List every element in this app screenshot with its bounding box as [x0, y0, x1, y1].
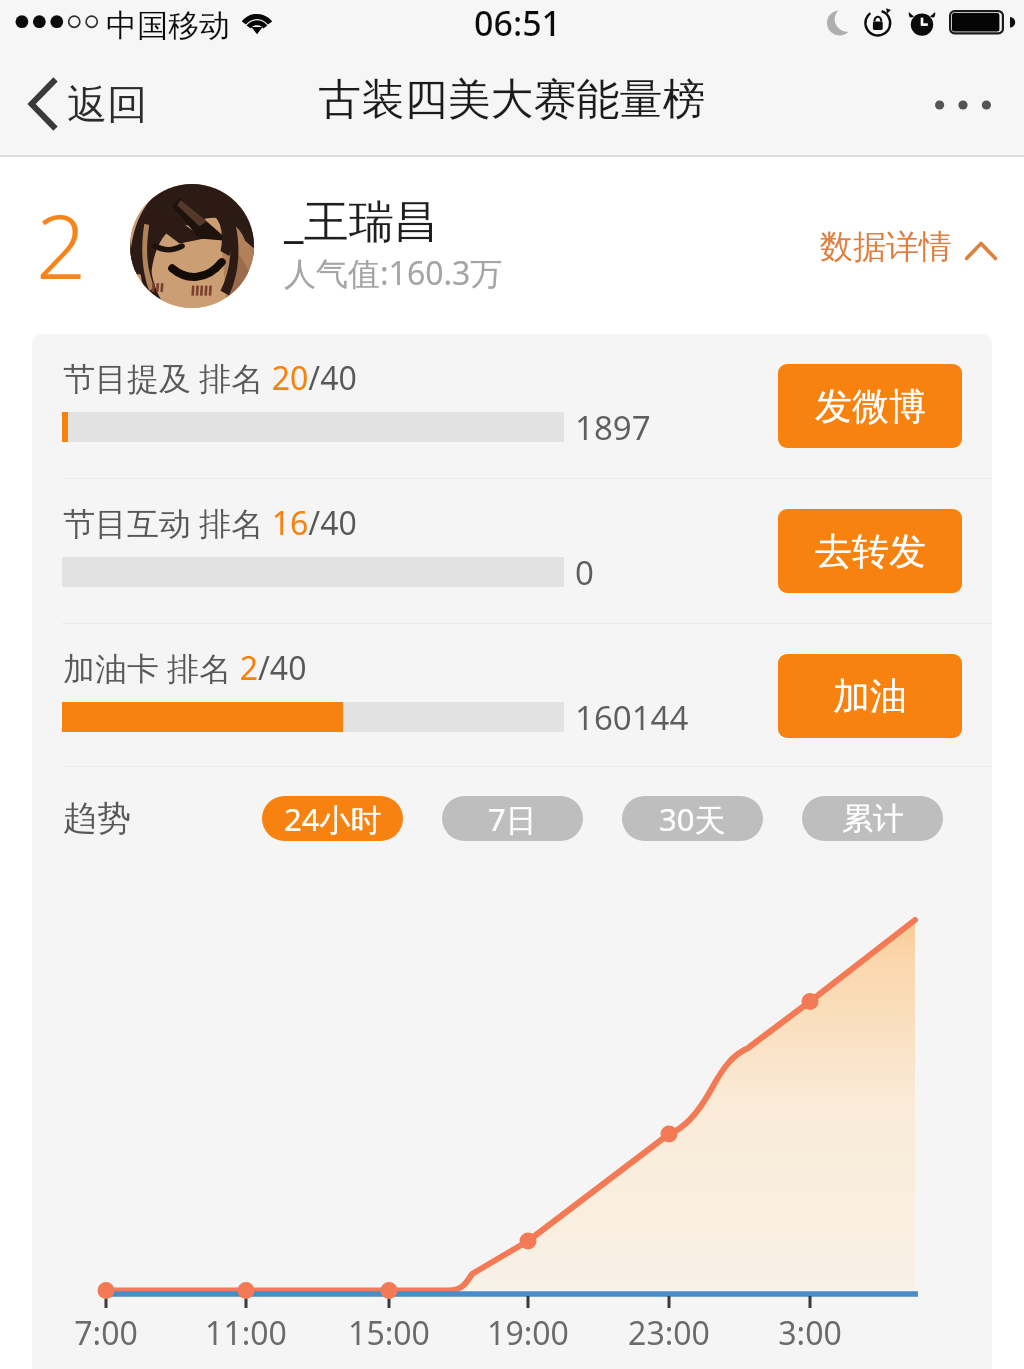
staticText: 返回 — [67, 79, 147, 129]
staticText: 7日 — [488, 798, 537, 840]
staticText: 累计 — [842, 799, 904, 838]
staticText: 发微博 — [815, 383, 926, 430]
staticText: 7:00 — [74, 1311, 138, 1355]
staticText: 30天 — [659, 798, 726, 840]
button[interactable]: 发微博 — [778, 364, 962, 448]
staticText: 3:00 — [778, 1311, 842, 1355]
staticText: 中国移动 — [106, 6, 230, 45]
staticText: 11:00 — [205, 1311, 287, 1355]
staticText: 24小时 — [284, 798, 382, 840]
staticText: 06:51 — [474, 0, 562, 45]
button[interactable]: More options — [887, 55, 1009, 154]
button[interactable]: 30天 — [622, 796, 763, 841]
button[interactable]: 24小时 — [262, 796, 403, 841]
button[interactable]: 累计 — [802, 796, 943, 841]
staticText: 加油卡 排名 2/40 — [63, 646, 307, 690]
button[interactable]: 返回 — [0, 55, 165, 154]
staticText: 节目提及 排名 20/40 — [63, 356, 357, 400]
staticText: 数据详情 — [820, 226, 952, 268]
staticText: 加油 — [833, 673, 907, 720]
staticText: 节目互动 排名 16/40 — [63, 501, 357, 545]
staticText: 趋势 — [63, 797, 131, 840]
staticText: 160144 — [575, 695, 689, 740]
staticText: _王瑞昌 — [284, 189, 439, 250]
staticText: 15:00 — [348, 1311, 430, 1355]
button[interactable]: 7日 — [442, 796, 583, 841]
staticText: 去转发 — [815, 528, 926, 575]
staticText: 古装四美大赛能量榜 — [0, 73, 1024, 127]
staticText: 1897 — [575, 405, 651, 450]
staticText: 23:00 — [628, 1311, 710, 1355]
button[interactable]: 数据详情 — [806, 217, 1011, 279]
staticText: 人气值:160.3万 — [284, 251, 503, 295]
staticText: 0 — [575, 550, 594, 595]
button[interactable]: 去转发 — [778, 509, 962, 593]
button[interactable]: 加油 — [778, 654, 962, 738]
staticText: 19:00 — [487, 1311, 569, 1355]
staticText: 2 — [36, 185, 87, 305]
